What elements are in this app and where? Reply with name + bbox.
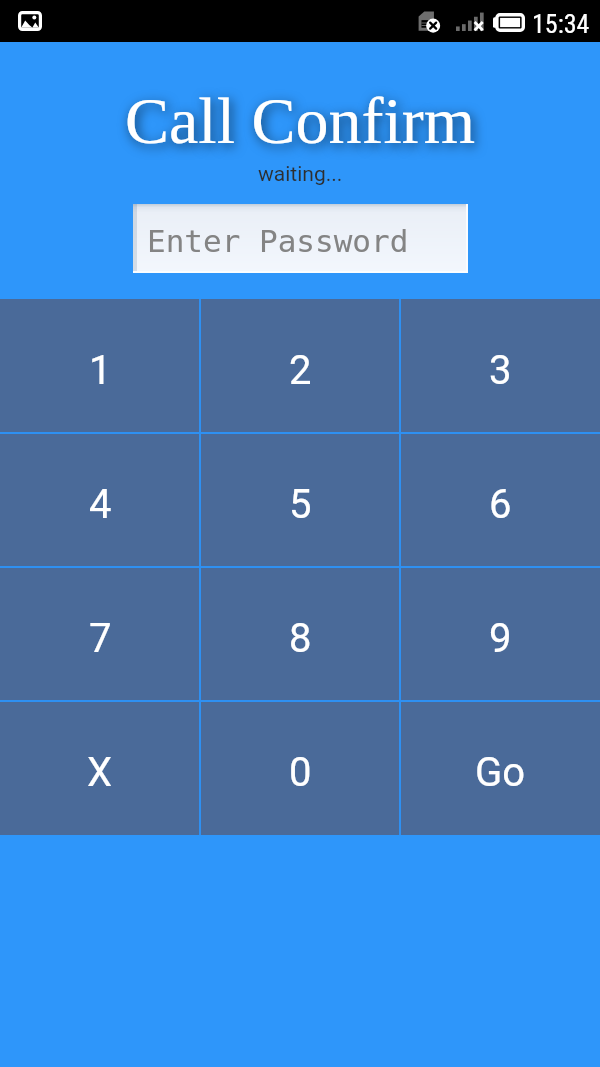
button[interactable]: 2	[200, 299, 400, 433]
staticText: 3	[489, 347, 512, 394]
staticText: 4	[89, 481, 112, 528]
staticText: 1	[89, 347, 112, 394]
staticText: 5	[289, 481, 312, 528]
button[interactable]: 6	[400, 433, 600, 567]
button[interactable]: 4	[0, 433, 200, 567]
staticText: Enter Password	[147, 223, 409, 259]
staticText: 0	[289, 749, 312, 796]
button[interactable]: 7	[0, 567, 200, 701]
button[interactable]: Go	[400, 701, 600, 835]
staticText: 15:34	[532, 9, 590, 39]
staticText: Call Confirm	[125, 84, 476, 157]
button[interactable]: 8	[200, 567, 400, 701]
other: Gallery	[18, 11, 42, 31]
staticText: 9	[489, 615, 512, 662]
button[interactable]: 5	[200, 433, 400, 567]
staticText: X	[87, 749, 113, 796]
staticText: 7	[89, 615, 112, 662]
button[interactable]: 0	[200, 701, 400, 835]
staticText: 2	[289, 347, 312, 394]
button[interactable]: 9	[400, 567, 600, 701]
button[interactable]: X	[0, 701, 200, 835]
staticText: 6	[489, 481, 512, 528]
button[interactable]: 3	[400, 299, 600, 433]
staticText: 8	[289, 615, 312, 662]
staticText: waiting...	[258, 162, 343, 187]
staticText: Go	[475, 749, 526, 796]
button[interactable]: Enter Password	[133, 204, 468, 273]
button[interactable]: 1	[0, 299, 200, 433]
